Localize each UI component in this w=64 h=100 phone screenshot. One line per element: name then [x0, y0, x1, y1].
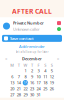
- staticText: 1: [24, 68, 26, 73]
- button[interactable]: Save contact: [2, 35, 62, 42]
- staticText: 12: [50, 74, 54, 79]
- staticText: 14: [17, 80, 21, 85]
- staticText: Set a follow up for later: [15, 50, 48, 54]
- staticText: 7: [18, 74, 20, 79]
- staticText: 19: [50, 80, 54, 85]
- staticText: December: [22, 56, 42, 61]
- staticText: 16: [30, 80, 34, 85]
- staticText: 6: [11, 74, 13, 79]
- staticText: 8: [24, 74, 26, 79]
- staticText: W: [23, 63, 27, 68]
- staticText: S: [44, 63, 46, 68]
- staticText: 26: [50, 86, 54, 91]
- staticText: 22: [23, 86, 27, 91]
- button[interactable]: <: [3, 56, 9, 62]
- staticText: 20: [10, 86, 14, 91]
- staticText: 30: [30, 92, 34, 97]
- staticText: 10: [37, 74, 41, 79]
- staticText: <: [5, 56, 7, 61]
- staticText: 24: [37, 86, 41, 91]
- staticText: S: [51, 63, 53, 68]
- staticText: AFTER CALL: [12, 7, 52, 16]
- staticText: Save contact: [10, 36, 34, 41]
- staticText: T: [18, 63, 20, 68]
- staticText: 9: [31, 74, 33, 79]
- staticText: 15: [23, 80, 27, 85]
- staticText: 29: [23, 92, 27, 97]
- staticText: >: [57, 56, 59, 61]
- staticText: 4: [44, 68, 46, 73]
- staticText: 17: [37, 80, 41, 85]
- staticText: 21: [17, 86, 21, 91]
- staticText: 13: [10, 80, 14, 85]
- staticText: Add reminder: [19, 44, 45, 49]
- staticText: Unknown caller: [13, 27, 40, 32]
- staticText: F: [38, 63, 40, 68]
- staticText: Private Number: [13, 20, 44, 26]
- staticText: 3: [38, 68, 40, 73]
- staticText: 27: [10, 92, 14, 97]
- staticText: T: [31, 63, 33, 68]
- staticText: 31: [37, 92, 41, 97]
- staticText: 5: [51, 68, 53, 73]
- staticText: 2: [31, 68, 33, 73]
- staticText: 23: [30, 86, 34, 91]
- staticText: 28: [17, 92, 21, 97]
- staticText: 18: [43, 80, 47, 85]
- staticText: M: [10, 63, 14, 68]
- staticText: 25: [43, 86, 47, 91]
- staticText: 11: [43, 74, 47, 79]
- button[interactable]: >: [55, 56, 61, 62]
